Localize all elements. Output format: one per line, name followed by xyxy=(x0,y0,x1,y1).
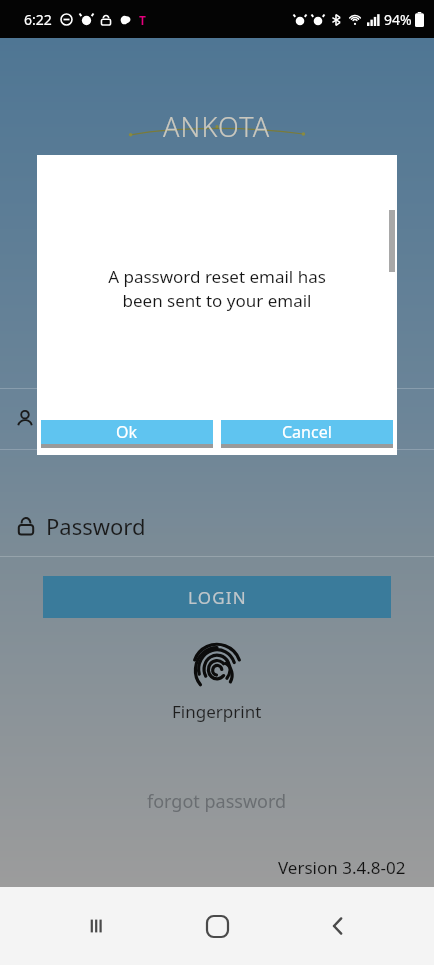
staticText: Ok xyxy=(116,421,138,443)
staticText: LOGIN xyxy=(188,586,247,609)
button[interactable]: LOGIN xyxy=(43,576,391,618)
staticText: Fingerprint xyxy=(172,700,262,723)
staticText: forgot password xyxy=(147,789,287,814)
staticText: 94% xyxy=(384,10,412,29)
staticText: 6:22 xyxy=(24,10,52,29)
button[interactable]: Cancel xyxy=(221,420,393,444)
button[interactable]: Password xyxy=(0,496,434,556)
staticText: A password reset email has been sent to … xyxy=(108,265,326,312)
button[interactable]: Back xyxy=(314,902,362,950)
staticText: Version 3.4.8-02 xyxy=(278,856,406,879)
staticText: ANKOTA xyxy=(163,108,271,145)
staticText: Cancel xyxy=(282,421,332,443)
button[interactable]: Recent apps xyxy=(73,902,121,950)
button[interactable]: Ok xyxy=(41,420,213,444)
staticText: Password xyxy=(46,511,146,541)
staticText: T xyxy=(139,12,146,28)
button[interactable]: Home xyxy=(193,902,241,950)
button[interactable]: forgot password xyxy=(131,783,303,820)
button[interactable]: sa xyxy=(0,389,434,449)
button[interactable]: Fingerprint xyxy=(160,636,274,727)
staticText: sa xyxy=(44,405,66,434)
